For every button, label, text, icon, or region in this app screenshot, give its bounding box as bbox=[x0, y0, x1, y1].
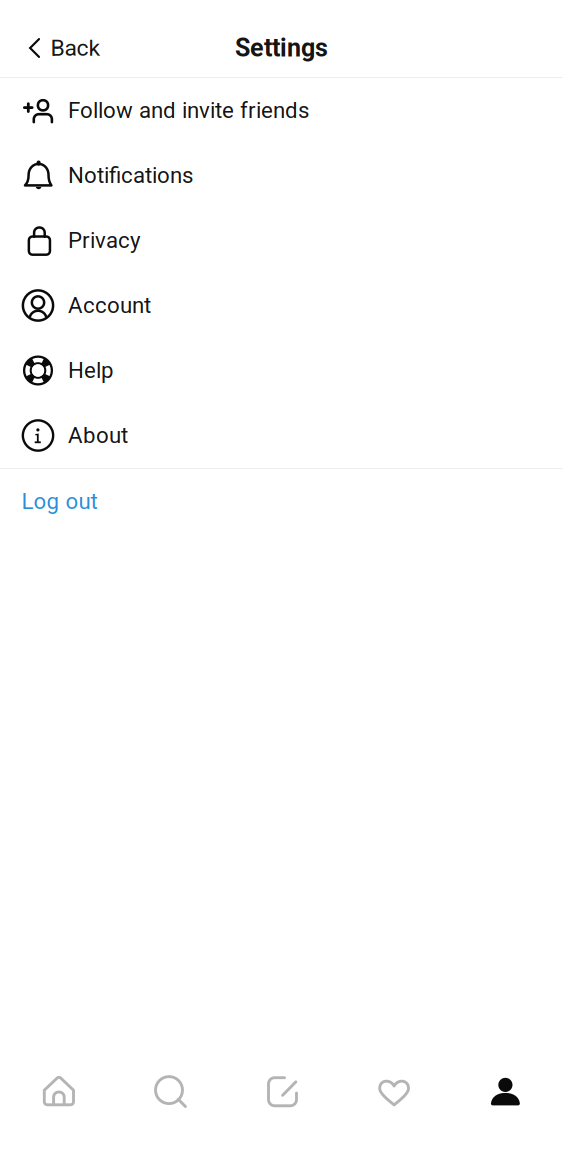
button[interactable]: Follow and invite friends bbox=[0, 78, 563, 143]
button[interactable]: Home bbox=[0, 1032, 113, 1153]
button[interactable]: Back bbox=[0, 19, 117, 77]
button[interactable]: Activity bbox=[338, 1032, 450, 1153]
button[interactable]: Account bbox=[0, 273, 563, 338]
staticText: Back bbox=[51, 35, 101, 61]
staticText: About bbox=[68, 422, 128, 449]
staticText: Follow and invite friends bbox=[68, 97, 309, 124]
staticText: Notifications bbox=[68, 162, 193, 189]
button[interactable]: Help bbox=[0, 338, 563, 403]
staticText: Privacy bbox=[68, 227, 141, 254]
staticText: Settings bbox=[235, 33, 328, 63]
button[interactable]: Profile bbox=[450, 1032, 563, 1153]
button[interactable]: Notifications bbox=[0, 143, 563, 208]
button[interactable]: Log out bbox=[0, 469, 563, 534]
button[interactable]: Create bbox=[225, 1032, 338, 1153]
staticText: Account bbox=[68, 292, 151, 319]
button[interactable]: About bbox=[0, 403, 563, 468]
staticText: Help bbox=[68, 357, 114, 384]
staticText: Log out bbox=[21, 488, 97, 515]
button[interactable]: Search bbox=[113, 1032, 225, 1153]
button[interactable]: Privacy bbox=[0, 208, 563, 273]
